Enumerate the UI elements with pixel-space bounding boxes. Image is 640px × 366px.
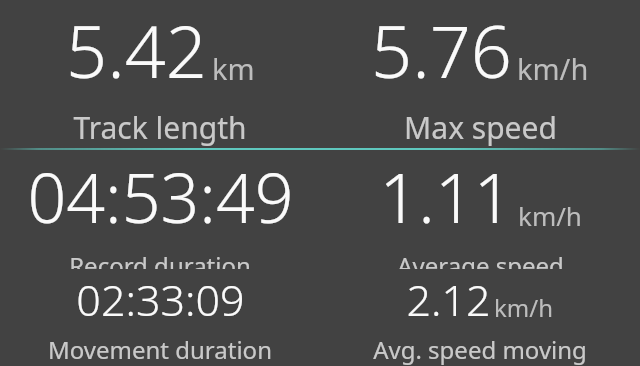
staticText: km/h — [518, 198, 582, 233]
staticText: 5.76 — [371, 1, 512, 99]
button[interactable]: Record duration 04:53:49 — [0, 150, 320, 269]
staticText: 2.12 — [406, 270, 491, 329]
staticText: 5.42 — [66, 1, 207, 99]
button[interactable]: Max speed 5.76 km/h — [320, 0, 640, 148]
button[interactable]: Average speed moving 2.12 km per hour — [320, 269, 640, 366]
staticText: 1.11 — [379, 150, 513, 243]
staticText: Track length — [73, 107, 247, 148]
staticText: km/h — [517, 49, 589, 88]
staticText: Record duration — [69, 249, 251, 269]
staticText: 04:53:49 — [27, 150, 294, 243]
staticText: km — [212, 49, 255, 88]
button[interactable]: Average speed 1.11 km per hour — [320, 150, 640, 269]
staticText: Movement duration — [48, 333, 272, 366]
staticText: Average speed — [397, 249, 564, 269]
staticText: km/h — [494, 291, 554, 324]
staticText: Avg. speed moving — [373, 333, 587, 366]
staticText: 02:33:09 — [76, 270, 245, 329]
staticText: Max speed — [404, 107, 557, 148]
button[interactable]: Track length 5.42 km — [0, 0, 320, 148]
button[interactable]: Movement duration 02:33:09 — [0, 269, 320, 366]
